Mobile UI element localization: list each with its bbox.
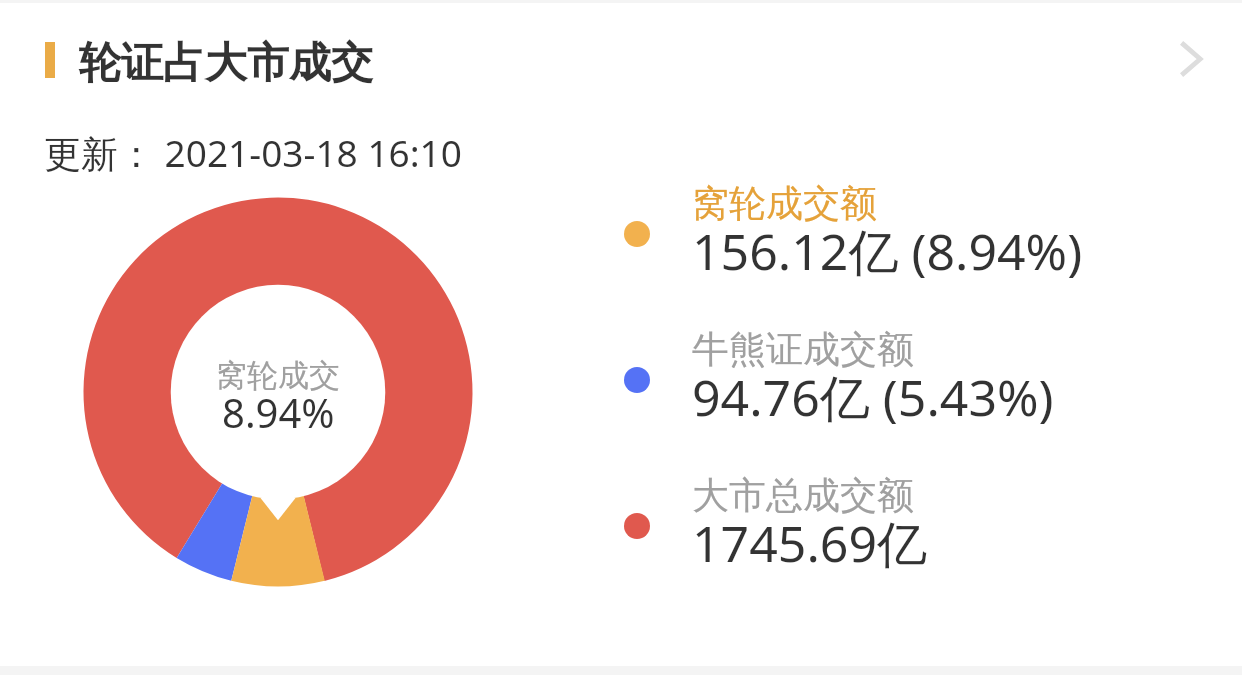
- staticText: 8.94%: [222, 385, 335, 439]
- staticText: 大市总成交额: [692, 472, 914, 519]
- staticText: 窝轮成交额: [692, 180, 877, 227]
- button[interactable]: 牛熊证成交额: [600, 325, 1120, 455]
- staticText: 窝轮成交: [216, 356, 340, 395]
- staticText: 156.12亿 (8.94%): [692, 217, 1083, 285]
- staticText: 轮证占大市成交: [79, 37, 373, 90]
- button[interactable]: 大市总成交额: [600, 471, 1120, 601]
- staticText: 牛熊证成交额: [692, 326, 914, 373]
- button[interactable]: More details: [1152, 16, 1230, 94]
- staticText: 更新： 2021-03-18 16:10: [44, 127, 462, 178]
- button[interactable]: Warrant turnover donut chart: [78, 192, 478, 592]
- button[interactable]: 窝轮成交额: [600, 179, 1120, 309]
- staticText: 94.76亿 (5.43%): [692, 363, 1054, 431]
- staticText: 1745.69亿: [692, 509, 927, 577]
- button[interactable]: 轮证占大市成交: [0, 3, 1242, 123]
